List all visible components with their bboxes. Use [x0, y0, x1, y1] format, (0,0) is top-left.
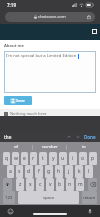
staticText: u: [61, 155, 65, 162]
button[interactable]: q: [3, 152, 10, 165]
staticText: chatcoon.com: [38, 14, 66, 20]
button[interactable]: in: [67, 142, 100, 152]
staticText: I'm not special but a Limited Edition: [6, 53, 77, 59]
button[interactable]: y: [49, 152, 57, 165]
button[interactable]: Backspace: [88, 178, 97, 191]
button[interactable]: s: [16, 165, 23, 178]
button[interactable]: d: [25, 165, 33, 178]
staticText: p: [91, 155, 95, 162]
staticText: z: [19, 181, 22, 188]
button[interactable]: Done: [84, 134, 96, 140]
button[interactable]: Next field: [75, 134, 81, 140]
button[interactable]: space: [18, 191, 79, 204]
button[interactable]: w: [12, 152, 19, 165]
button[interactable]: I'm not special but a Limited Edition: [4, 51, 96, 93]
button[interactable]: n: [66, 178, 74, 191]
staticText: i: [72, 155, 74, 162]
button[interactable]: p: [89, 152, 97, 165]
staticText: d: [27, 168, 31, 175]
button[interactable]: b: [56, 178, 64, 191]
staticText: h: [57, 168, 61, 175]
button[interactable]: return: [82, 191, 97, 204]
staticText: About me: [4, 43, 24, 49]
staticText: f: [38, 168, 40, 175]
staticText: of: [14, 144, 18, 150]
staticText: a: [9, 168, 12, 175]
button[interactable]: chatcoon.com: [5, 12, 95, 22]
staticText: b: [58, 181, 62, 188]
staticText: g: [47, 168, 51, 175]
button[interactable]: z: [16, 178, 24, 191]
staticText: r: [32, 155, 35, 162]
staticText: Done: [84, 134, 96, 140]
button[interactable]: u: [59, 152, 67, 165]
staticText: m: [78, 181, 83, 188]
staticText: l: [88, 168, 90, 175]
button[interactable]: o: [79, 152, 87, 165]
staticText: j: [68, 168, 70, 175]
staticText: x: [29, 181, 32, 188]
staticText: 7:19: [7, 2, 16, 8]
staticText: q: [5, 155, 9, 162]
button[interactable]: h: [55, 165, 63, 178]
button[interactable]: of: [0, 142, 32, 152]
button[interactable]: c: [36, 178, 44, 191]
button[interactable]: number: [33, 142, 66, 152]
staticText: e: [23, 155, 26, 162]
button[interactable]: f: [35, 165, 43, 178]
button[interactable]: 123: [3, 191, 15, 204]
button[interactable]: Shift: [3, 178, 12, 191]
staticText: Save: [16, 98, 25, 103]
staticText: k: [78, 168, 81, 175]
button[interactable]: j: [65, 165, 73, 178]
staticText: Nothing much here: [10, 111, 47, 116]
button[interactable]: k: [75, 165, 83, 178]
staticText: v: [49, 181, 52, 188]
staticText: the: [4, 134, 12, 140]
staticText: number: [42, 144, 58, 150]
button[interactable]: Voice input: [87, 208, 93, 214]
staticText: o: [81, 155, 85, 162]
staticText: 123: [5, 195, 13, 201]
button[interactable]: e: [21, 152, 28, 165]
staticText: c: [39, 181, 42, 188]
button[interactable]: a: [7, 165, 14, 178]
staticText: s: [18, 168, 21, 175]
button[interactable]: Previous field: [66, 134, 72, 140]
staticText: return: [83, 195, 96, 201]
button[interactable]: r: [30, 152, 37, 165]
staticText: t: [42, 155, 44, 162]
button[interactable]: l: [85, 165, 93, 178]
button[interactable]: m: [76, 178, 84, 191]
button[interactable]: t: [39, 152, 47, 165]
button[interactable]: Menu: [91, 28, 97, 34]
button[interactable]: v: [46, 178, 54, 191]
staticText: space: [43, 195, 55, 201]
button[interactable]: i: [69, 152, 77, 165]
button[interactable]: x: [26, 178, 34, 191]
button[interactable]: g: [45, 165, 53, 178]
staticText: n: [68, 181, 72, 188]
staticText: w: [14, 155, 18, 162]
button[interactable]: Share: [86, 14, 92, 20]
staticText: in: [82, 144, 86, 150]
staticText: y: [52, 155, 55, 162]
button[interactable]: Emoji keyboard: [7, 208, 13, 214]
button[interactable]: Save: [4, 96, 32, 105]
